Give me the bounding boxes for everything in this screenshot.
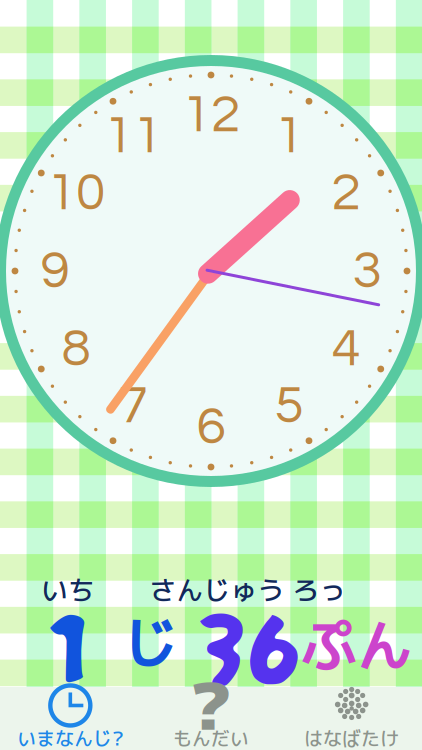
staticText: はなばたけ — [304, 725, 399, 750]
staticText: いまなんじ? — [17, 725, 123, 750]
staticText: 2 — [332, 165, 361, 220]
staticText: 11 — [104, 108, 162, 163]
staticText: ぷん — [301, 606, 413, 684]
staticText: 3 — [352, 243, 381, 298]
button[interactable]: いまなんじ? — [0, 685, 141, 750]
staticText: 9 — [40, 243, 69, 298]
staticText: いち — [41, 571, 95, 609]
staticText: 7 — [118, 379, 147, 433]
staticText: ? — [190, 661, 232, 750]
staticText: 5 — [274, 379, 303, 433]
staticText: 1 — [46, 578, 87, 706]
staticText: 6 — [196, 399, 225, 454]
staticText: もんだい — [173, 725, 249, 750]
staticText: 1 — [274, 108, 303, 163]
button[interactable]: はなばたけ — [281, 685, 422, 750]
staticText: 36 — [196, 580, 301, 708]
button[interactable]: ? — [141, 685, 281, 750]
staticText: 8 — [61, 321, 90, 376]
staticText: じ — [123, 603, 179, 681]
staticText: 4 — [332, 321, 361, 376]
staticText: 10 — [47, 165, 105, 220]
staticText: さんじゅう ろっ — [149, 571, 346, 609]
staticText: 12 — [182, 87, 240, 142]
